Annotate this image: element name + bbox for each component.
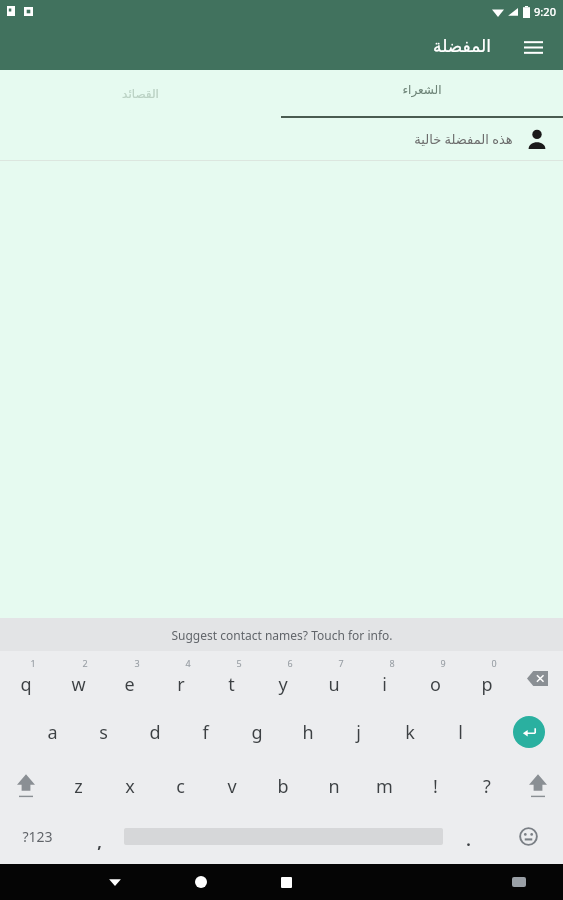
button[interactable]: Shift bbox=[512, 759, 563, 813]
staticText: c bbox=[176, 774, 185, 799]
button[interactable]: Suggest contact names? Touch for info. bbox=[0, 618, 563, 651]
button[interactable]: k bbox=[384, 705, 435, 759]
button[interactable]: h bbox=[282, 705, 333, 759]
button[interactable]: الشعراء bbox=[281, 70, 563, 118]
staticText: 8 bbox=[389, 657, 395, 669]
staticText: a bbox=[47, 720, 58, 745]
staticText: 4 bbox=[185, 657, 191, 669]
button[interactable]: z bbox=[52, 759, 104, 813]
button[interactable]: b bbox=[257, 759, 308, 813]
button[interactable]: Home bbox=[173, 864, 228, 900]
button[interactable]: l bbox=[435, 705, 486, 759]
button[interactable]: Enter bbox=[495, 705, 563, 759]
staticText: 7 bbox=[338, 657, 344, 669]
button[interactable]: Menu bbox=[513, 26, 553, 66]
button[interactable]: Back bbox=[87, 864, 142, 900]
staticText: g bbox=[251, 720, 263, 745]
staticText: s bbox=[99, 720, 108, 745]
staticText: الشعراء bbox=[402, 83, 442, 97]
button[interactable]: 1 bbox=[0, 651, 52, 705]
button[interactable]: Space bbox=[124, 813, 443, 860]
button[interactable]: Emoji bbox=[493, 813, 563, 860]
staticText: y bbox=[278, 672, 288, 697]
button[interactable]: 4 bbox=[155, 651, 206, 705]
button[interactable]: c bbox=[155, 759, 206, 813]
staticText: , bbox=[97, 831, 102, 853]
staticText: Suggest contact names? Touch for info. bbox=[171, 627, 393, 643]
staticText: u bbox=[328, 672, 340, 697]
button[interactable]: 8 bbox=[359, 651, 410, 705]
staticText: ? bbox=[483, 774, 491, 799]
button[interactable]: Backspace bbox=[512, 651, 563, 705]
staticText: 5 bbox=[236, 657, 242, 669]
button[interactable]: a bbox=[27, 705, 78, 759]
staticText: 1 bbox=[30, 657, 36, 669]
button[interactable]: 0 bbox=[461, 651, 512, 705]
staticText: المفضلة bbox=[433, 36, 491, 56]
button[interactable]: Keyboard bbox=[491, 864, 546, 900]
button[interactable]: ! bbox=[410, 759, 461, 813]
staticText: d bbox=[149, 720, 161, 745]
button[interactable]: 6 bbox=[257, 651, 308, 705]
staticText: 2 bbox=[82, 657, 88, 669]
button[interactable]: 5 bbox=[206, 651, 257, 705]
staticText: x bbox=[125, 774, 135, 799]
button[interactable]: m bbox=[359, 759, 410, 813]
staticText: q bbox=[20, 672, 32, 697]
staticText: k bbox=[405, 720, 415, 745]
button[interactable]: Recents bbox=[259, 864, 314, 900]
staticText: m bbox=[376, 774, 393, 799]
staticText: 6 bbox=[287, 657, 293, 669]
staticText: 3 bbox=[134, 657, 140, 669]
button[interactable]: . bbox=[443, 813, 493, 860]
button[interactable]: القصائد bbox=[0, 70, 281, 118]
staticText: ! bbox=[433, 774, 438, 799]
staticText: n bbox=[328, 774, 340, 799]
button[interactable]: 7 bbox=[308, 651, 359, 705]
staticText: . bbox=[466, 829, 471, 851]
button[interactable]: g bbox=[231, 705, 282, 759]
button[interactable]: f bbox=[180, 705, 231, 759]
button[interactable]: ?123 bbox=[0, 813, 74, 860]
button[interactable]: Shift bbox=[0, 759, 52, 813]
staticText: e bbox=[124, 672, 135, 697]
button[interactable]: x bbox=[104, 759, 155, 813]
staticText: 9:20 bbox=[534, 4, 556, 19]
staticText: o bbox=[430, 672, 441, 697]
staticText: 9 bbox=[440, 657, 446, 669]
staticText: i bbox=[382, 672, 387, 697]
staticText: j bbox=[356, 720, 361, 745]
staticText: h bbox=[302, 720, 314, 745]
button[interactable]: ? bbox=[461, 759, 512, 813]
staticText: t bbox=[228, 672, 235, 697]
staticText: p bbox=[481, 672, 493, 697]
staticText: القصائد bbox=[122, 87, 159, 101]
staticText: هذه المفضلة خالية bbox=[414, 130, 513, 148]
staticText: f bbox=[202, 720, 209, 745]
staticText: v bbox=[227, 774, 237, 799]
button[interactable]: d bbox=[129, 705, 180, 759]
button[interactable]: هذه المفضلة خالية bbox=[0, 118, 563, 160]
staticText: w bbox=[71, 672, 86, 697]
button[interactable]: j bbox=[333, 705, 384, 759]
staticText: r bbox=[177, 672, 185, 697]
staticText: b bbox=[277, 774, 289, 799]
button[interactable]: v bbox=[206, 759, 257, 813]
staticText: ?123 bbox=[22, 827, 53, 846]
button[interactable]: , bbox=[74, 813, 124, 860]
staticText: z bbox=[74, 774, 83, 799]
button[interactable]: 9 bbox=[410, 651, 461, 705]
button[interactable]: 3 bbox=[104, 651, 155, 705]
button[interactable]: n bbox=[308, 759, 359, 813]
button[interactable]: s bbox=[78, 705, 129, 759]
staticText: 0 bbox=[491, 657, 497, 669]
button[interactable]: 2 bbox=[52, 651, 104, 705]
staticText: l bbox=[458, 720, 463, 745]
